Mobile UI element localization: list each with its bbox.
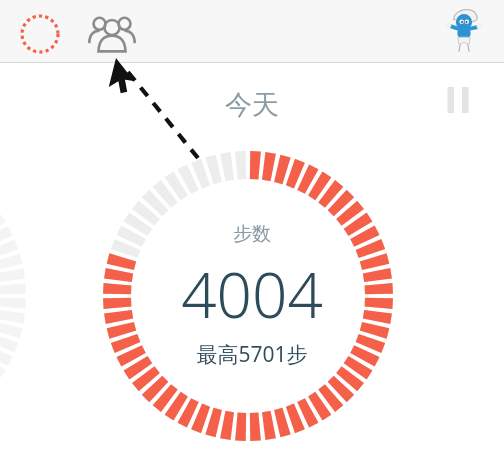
staticText: 4004 xyxy=(181,252,323,336)
staticText: 今天 xyxy=(0,88,504,122)
button[interactable]: Profile xyxy=(438,5,490,57)
button[interactable]: Friends xyxy=(86,10,138,56)
button[interactable]: Pause xyxy=(436,78,480,122)
button[interactable]: Activity ring xyxy=(18,12,62,56)
staticText: 最高5701步 xyxy=(196,340,308,369)
staticText: 步数 xyxy=(233,222,271,246)
